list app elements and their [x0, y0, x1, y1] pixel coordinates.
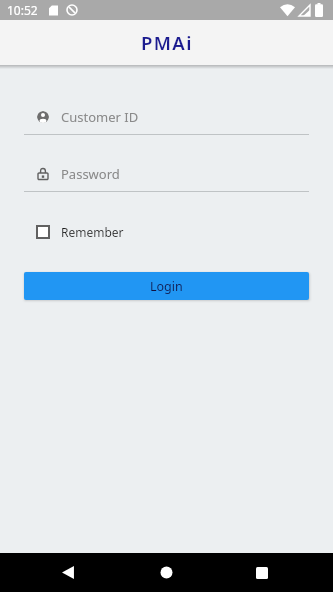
staticText: Remember — [61, 224, 124, 240]
button[interactable]: Password — [24, 162, 309, 186]
button[interactable]: Remember — [24, 219, 124, 245]
button[interactable] — [147, 553, 186, 592]
staticText: Customer ID — [61, 108, 139, 126]
button[interactable]: Customer ID — [24, 105, 309, 129]
button[interactable] — [49, 553, 88, 592]
staticText: Password — [61, 165, 120, 183]
staticText: 10:52 — [7, 2, 38, 18]
button[interactable] — [242, 553, 281, 592]
staticText: PMAi — [141, 30, 193, 55]
staticText: Login — [150, 278, 183, 295]
button[interactable]: Login — [24, 272, 309, 300]
